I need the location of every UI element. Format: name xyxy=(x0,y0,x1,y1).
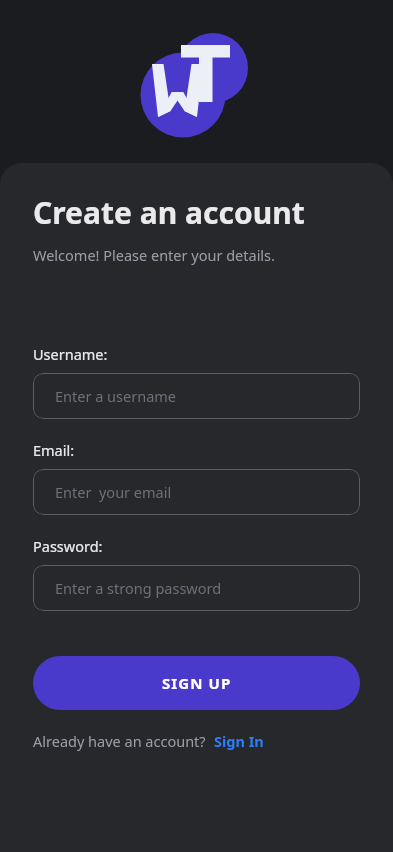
staticText: Sign In xyxy=(214,731,264,751)
button[interactable]: SIGN UP xyxy=(33,656,360,710)
button[interactable]: Enter your email xyxy=(33,469,360,515)
staticText: Already have an account? xyxy=(33,731,206,751)
button[interactable]: Enter a username xyxy=(33,373,360,419)
staticText: Create an account xyxy=(33,192,305,233)
staticText: Password: xyxy=(33,536,103,556)
staticText: Welcome! Please enter your details. xyxy=(33,245,275,265)
button[interactable]: Enter a strong password xyxy=(33,565,360,611)
staticText: Email: xyxy=(33,440,75,460)
staticText: Enter a username xyxy=(55,386,177,406)
button[interactable]: Sign In xyxy=(214,731,264,751)
staticText: Username: xyxy=(33,344,108,364)
staticText: Enter a strong password xyxy=(55,578,222,598)
other: WT logo xyxy=(0,0,393,163)
staticText: Enter your email xyxy=(55,482,172,502)
staticText: SIGN UP xyxy=(162,673,232,693)
